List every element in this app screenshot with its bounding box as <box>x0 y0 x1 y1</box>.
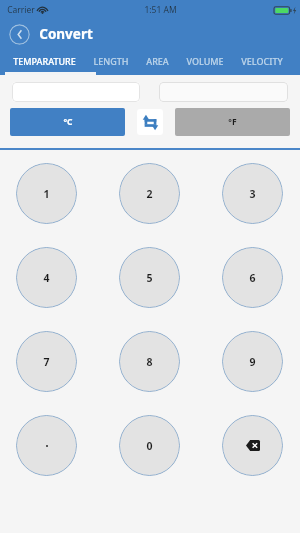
staticText: TEMPARATURE <box>13 55 76 67</box>
button[interactable]: Swap units <box>137 109 163 135</box>
staticText: Convert <box>39 25 93 43</box>
button[interactable]: 0 <box>119 415 180 476</box>
button[interactable]: 7 <box>16 331 77 392</box>
button[interactable]: Backspace <box>222 415 283 476</box>
button[interactable] <box>159 82 288 102</box>
staticText: 7 <box>43 355 50 369</box>
button[interactable]: AREA <box>146 48 169 73</box>
staticText: 1:51 AM <box>144 4 177 16</box>
button[interactable]: 8 <box>119 331 180 392</box>
button[interactable]: 5 <box>119 247 180 308</box>
button[interactable]: 3 <box>222 163 283 224</box>
staticText: AREA <box>146 55 169 67</box>
staticText: °F <box>228 116 237 128</box>
button[interactable]: VOLUME <box>186 48 224 73</box>
staticText: 3 <box>249 187 256 201</box>
staticText: 0 <box>146 439 153 453</box>
staticText: 4 <box>43 271 50 285</box>
staticText: 6 <box>249 271 256 285</box>
staticText: Carrier <box>7 4 35 16</box>
staticText: 5 <box>146 271 153 285</box>
button[interactable]: °F <box>175 108 290 136</box>
button[interactable] <box>16 415 77 476</box>
button[interactable]: TEMPARATURE <box>13 48 76 73</box>
staticText: 1 <box>43 187 50 201</box>
staticText: 9 <box>249 355 256 369</box>
button[interactable]: 4 <box>16 247 77 308</box>
button[interactable]: VELOCITY <box>241 48 283 73</box>
button[interactable]: 1 <box>16 163 77 224</box>
button[interactable]: Back <box>9 24 30 45</box>
button[interactable]: 2 <box>119 163 180 224</box>
staticText: °C <box>63 116 73 128</box>
staticText: 8 <box>146 355 153 369</box>
button[interactable]: 9 <box>222 331 283 392</box>
staticText: LENGTH <box>93 55 129 67</box>
button[interactable] <box>12 82 140 102</box>
button[interactable]: °C <box>10 108 125 136</box>
staticText: VOLUME <box>186 55 224 67</box>
staticText: 2 <box>146 187 153 201</box>
button[interactable]: LENGTH <box>93 48 129 73</box>
staticText: VELOCITY <box>241 55 283 67</box>
button[interactable]: 6 <box>222 247 283 308</box>
